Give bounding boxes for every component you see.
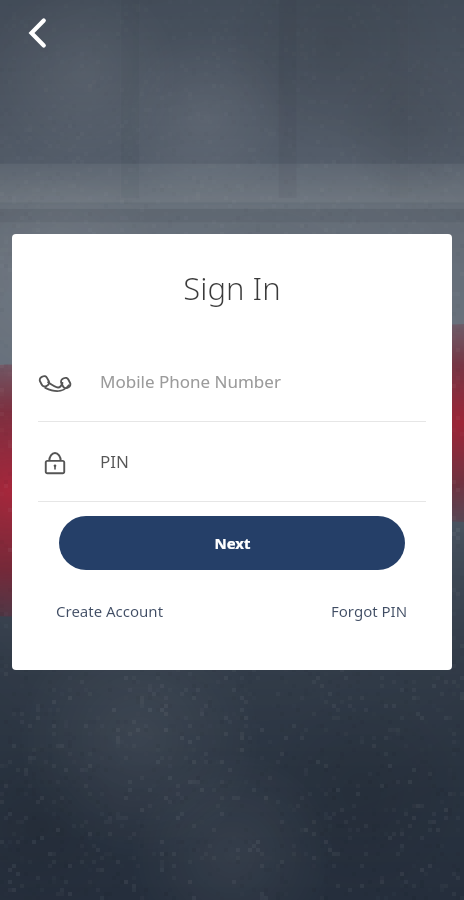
other: PIN — [38, 445, 72, 479]
button[interactable]: Next — [59, 516, 405, 570]
staticText: PIN — [100, 450, 129, 473]
staticText: Create Account — [56, 601, 164, 621]
button[interactable]: Back — [14, 9, 62, 57]
staticText: Mobile Phone Number — [100, 370, 281, 393]
staticText: Sign In — [183, 267, 281, 309]
button[interactable]: Phone — [12, 342, 452, 421]
staticText: Forgot PIN — [331, 601, 408, 621]
button[interactable]: Create Account — [56, 595, 164, 627]
other: Phone — [38, 365, 72, 399]
staticText: Next — [214, 533, 251, 553]
button[interactable]: Forgot PIN — [331, 595, 408, 627]
button[interactable]: PIN — [12, 422, 452, 501]
